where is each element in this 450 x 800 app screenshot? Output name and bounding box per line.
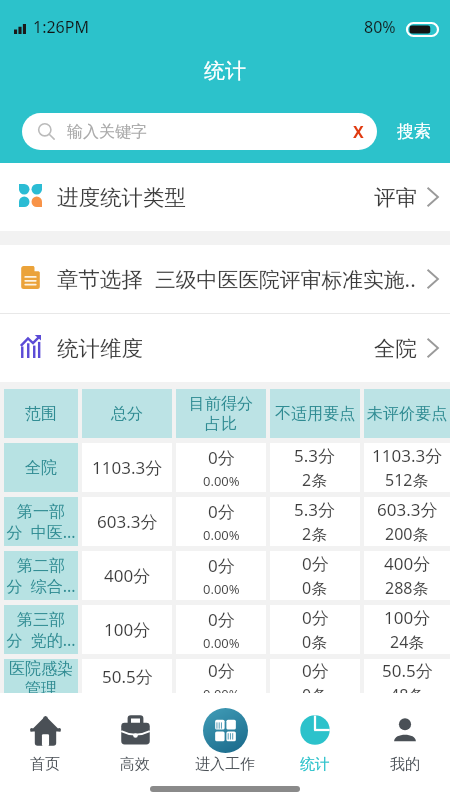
staticText: 评审 (374, 184, 417, 211)
staticText: 603.3分 (97, 510, 158, 533)
button[interactable]: 统计维度 (0, 314, 450, 382)
staticText: 0分 (208, 446, 235, 469)
staticText: X (353, 121, 364, 143)
staticText: 400分 (104, 564, 151, 587)
staticText: 输入关键字 (67, 122, 147, 142)
staticText: 100分 (104, 618, 151, 641)
staticText: 医院感染 管理 (9, 659, 73, 693)
button[interactable]: 章节选择 (0, 245, 450, 313)
staticText: 0分 (208, 608, 235, 631)
staticText: 三级中医医院评审标准实施... (155, 265, 417, 293)
staticText: 首页 (30, 755, 60, 774)
staticText: 总分 (111, 404, 143, 424)
staticText: 603.3分 (377, 498, 438, 521)
staticText: 48条 (390, 684, 425, 693)
staticText: 0分 (302, 552, 329, 575)
staticText: 0条 (302, 684, 328, 693)
staticText: 200条 (385, 523, 429, 545)
staticText: 0分 (208, 500, 235, 523)
button[interactable]: 进度统计类型 (0, 163, 450, 231)
staticText: 第三部 分 党的... (6, 610, 76, 650)
staticText: 未评价要点 (367, 404, 447, 424)
staticText: 0分 (208, 659, 235, 682)
staticText: 全院 (25, 458, 57, 478)
staticText: 0条 (302, 631, 328, 653)
staticText: 0.00% (203, 526, 240, 544)
staticText: 高效 (120, 755, 150, 774)
button[interactable]: 我的 (360, 693, 450, 778)
staticText: 进度统计类型 (57, 184, 186, 211)
staticText: 5.3分 (294, 498, 336, 521)
button[interactable]: 统计 (270, 693, 360, 778)
staticText: 1103.3分 (92, 456, 163, 479)
staticText: 1103.3分 (372, 444, 443, 467)
button[interactable]: 搜索 (377, 111, 450, 151)
staticText: 0分 (302, 606, 329, 629)
staticText: 50.5分 (382, 659, 433, 682)
button[interactable]: 首页 (0, 693, 90, 778)
staticText: 进入工作 (195, 755, 255, 774)
staticText: 统计 (300, 755, 330, 774)
staticText: 搜索 (397, 121, 431, 142)
staticText: 我的 (390, 755, 420, 774)
button[interactable]: Clear (343, 117, 373, 147)
button[interactable]: 进入工作 (180, 693, 270, 778)
staticText: 0分 (302, 659, 329, 682)
staticText: 288条 (385, 577, 429, 599)
staticText: 0.00% (203, 685, 240, 693)
staticText: 范围 (25, 404, 57, 424)
staticText: 0.00% (203, 580, 240, 598)
staticText: 80% (364, 16, 396, 38)
staticText: 50.5分 (102, 665, 153, 688)
staticText: 第二部 分 综合... (6, 556, 76, 596)
staticText: 统计 (204, 58, 246, 84)
staticText: 2条 (302, 469, 328, 491)
staticText: 目前得分 占比 (189, 394, 253, 434)
staticText: 1:26PM (33, 16, 89, 38)
staticText: 400分 (384, 552, 431, 575)
button[interactable]: 高效 (90, 693, 180, 778)
staticText: 全院 (374, 335, 417, 362)
staticText: 24条 (390, 631, 425, 653)
staticText: 100分 (384, 606, 431, 629)
staticText: 2条 (302, 523, 328, 545)
staticText: 0条 (302, 577, 328, 599)
staticText: 5.3分 (294, 444, 336, 467)
staticText: 统计维度 (57, 335, 143, 362)
button[interactable]: 输入关键字 (22, 113, 377, 150)
staticText: 512条 (385, 469, 429, 491)
staticText: 第一部 分 中医... (6, 502, 76, 542)
staticText: 0.00% (203, 472, 240, 490)
staticText: 章节选择 (57, 266, 143, 293)
staticText: 0.00% (203, 634, 240, 652)
staticText: 0分 (208, 554, 235, 577)
staticText: 不适用要点 (275, 404, 355, 424)
